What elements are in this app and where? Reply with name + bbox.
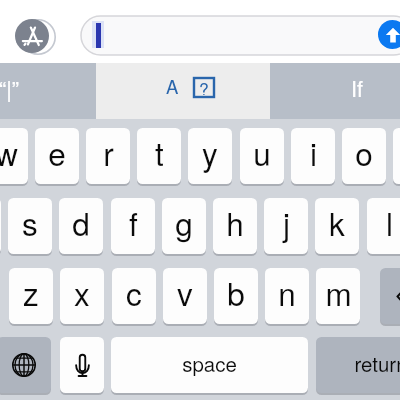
button[interactable]: If	[270, 63, 400, 119]
staticText: i	[310, 130, 317, 175]
staticText: v	[177, 270, 193, 315]
staticText: f	[129, 200, 138, 245]
button[interactable]: c	[112, 268, 156, 324]
staticText: If	[351, 72, 363, 103]
button[interactable]: t	[137, 128, 181, 184]
button[interactable]: z	[9, 268, 53, 324]
button[interactable]: b	[214, 268, 258, 324]
staticText: A	[166, 73, 179, 99]
button[interactable]: s	[8, 198, 52, 254]
button[interactable]: g	[162, 198, 206, 254]
button[interactable]: i	[291, 128, 335, 184]
staticText: s	[22, 200, 38, 245]
button[interactable]: y	[188, 128, 232, 184]
staticText: o	[355, 130, 373, 175]
staticText: u	[253, 130, 271, 175]
staticText: d	[72, 200, 90, 245]
button[interactable]: n	[265, 268, 309, 324]
staticText: return	[354, 348, 400, 377]
button[interactable]: Switch keyboard	[0, 337, 51, 393]
staticText: j	[283, 200, 290, 245]
staticText: r	[103, 130, 114, 175]
staticText: g	[175, 200, 193, 245]
button[interactable]: space	[111, 337, 308, 393]
staticText: ?	[199, 76, 209, 95]
button[interactable]	[81, 16, 400, 55]
button[interactable]: l	[367, 198, 400, 254]
button[interactable]: m	[316, 268, 360, 324]
staticText: m	[325, 270, 352, 315]
staticText: e	[48, 130, 66, 175]
button[interactable]: p	[393, 128, 400, 184]
staticText: c	[126, 270, 142, 315]
staticText: b	[227, 270, 245, 315]
staticText: y	[202, 130, 218, 175]
staticText: n	[278, 270, 296, 315]
staticText: space	[182, 348, 237, 377]
button[interactable]: e	[35, 128, 79, 184]
staticText: h	[226, 200, 244, 245]
button[interactable]: Delete	[380, 268, 400, 324]
button[interactable]: f	[111, 198, 155, 254]
button[interactable]: w	[0, 128, 28, 184]
button[interactable]: App Store	[15, 19, 49, 53]
button[interactable]: return	[316, 337, 400, 393]
button[interactable]: d	[59, 198, 103, 254]
button[interactable]: r	[86, 128, 130, 184]
button[interactable]: “|”	[0, 63, 96, 119]
button[interactable]: h	[213, 198, 257, 254]
staticText: z	[23, 270, 39, 315]
button[interactable]: v	[163, 268, 207, 324]
staticText: w	[0, 130, 18, 175]
staticText: t	[155, 130, 164, 175]
button[interactable]: a	[0, 198, 1, 254]
staticText: “|”	[0, 72, 19, 103]
staticText: x	[74, 270, 90, 315]
staticText: l	[386, 200, 393, 245]
button[interactable]: x	[60, 268, 104, 324]
button[interactable]: Dictation	[60, 337, 104, 393]
button[interactable]: j	[264, 198, 308, 254]
button[interactable]: A	[96, 63, 270, 119]
button[interactable]: u	[240, 128, 284, 184]
button[interactable]: Send	[378, 20, 400, 49]
staticText: k	[329, 200, 345, 245]
button[interactable]: o	[342, 128, 386, 184]
button[interactable]: k	[315, 198, 359, 254]
